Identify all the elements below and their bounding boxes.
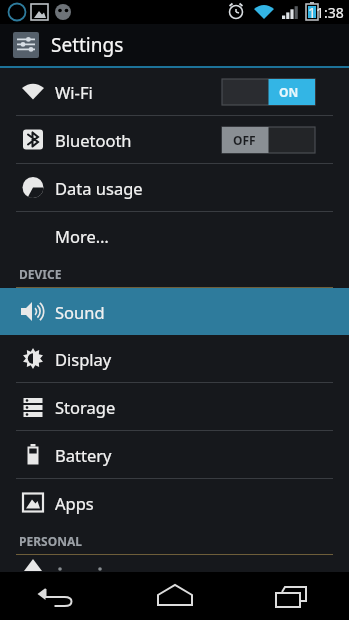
staticText: Data usage — [55, 177, 349, 199]
staticText: OFF — [233, 132, 256, 148]
staticText: Apps — [55, 492, 349, 514]
staticText: 11:38 — [308, 3, 344, 22]
staticText: Battery — [55, 444, 349, 466]
button[interactable]: Display — [0, 335, 349, 382]
button[interactable]: Recent apps — [233, 572, 349, 620]
button[interactable]: Sound — [0, 288, 349, 335]
button[interactable]: Storage — [0, 383, 349, 430]
staticText: PERSONAL — [19, 533, 82, 549]
button[interactable]: Battery — [0, 431, 349, 478]
staticText: Settings — [51, 32, 124, 58]
button[interactable]: Back — [0, 572, 117, 620]
staticText: ON — [279, 84, 299, 100]
button[interactable]: More… — [0, 212, 349, 259]
button[interactable]: OFF — [222, 127, 315, 153]
staticText: DEVICE — [19, 266, 62, 282]
button[interactable]: Data usage — [0, 164, 349, 211]
staticText: Display — [55, 348, 349, 370]
staticText: Sound — [55, 301, 349, 323]
staticText: Bluetooth — [55, 129, 222, 151]
button[interactable]: Apps — [0, 479, 349, 526]
button[interactable]: Bluetooth — [0, 116, 349, 163]
staticText: More… — [55, 225, 349, 247]
button[interactable]: Settings — [0, 24, 349, 66]
button[interactable]: ON — [222, 79, 315, 105]
button[interactable]: Wi-Fi — [0, 68, 349, 115]
button[interactable]: Home — [117, 572, 233, 620]
staticText: Wi-Fi — [55, 81, 222, 103]
staticText: Storage — [55, 396, 349, 418]
